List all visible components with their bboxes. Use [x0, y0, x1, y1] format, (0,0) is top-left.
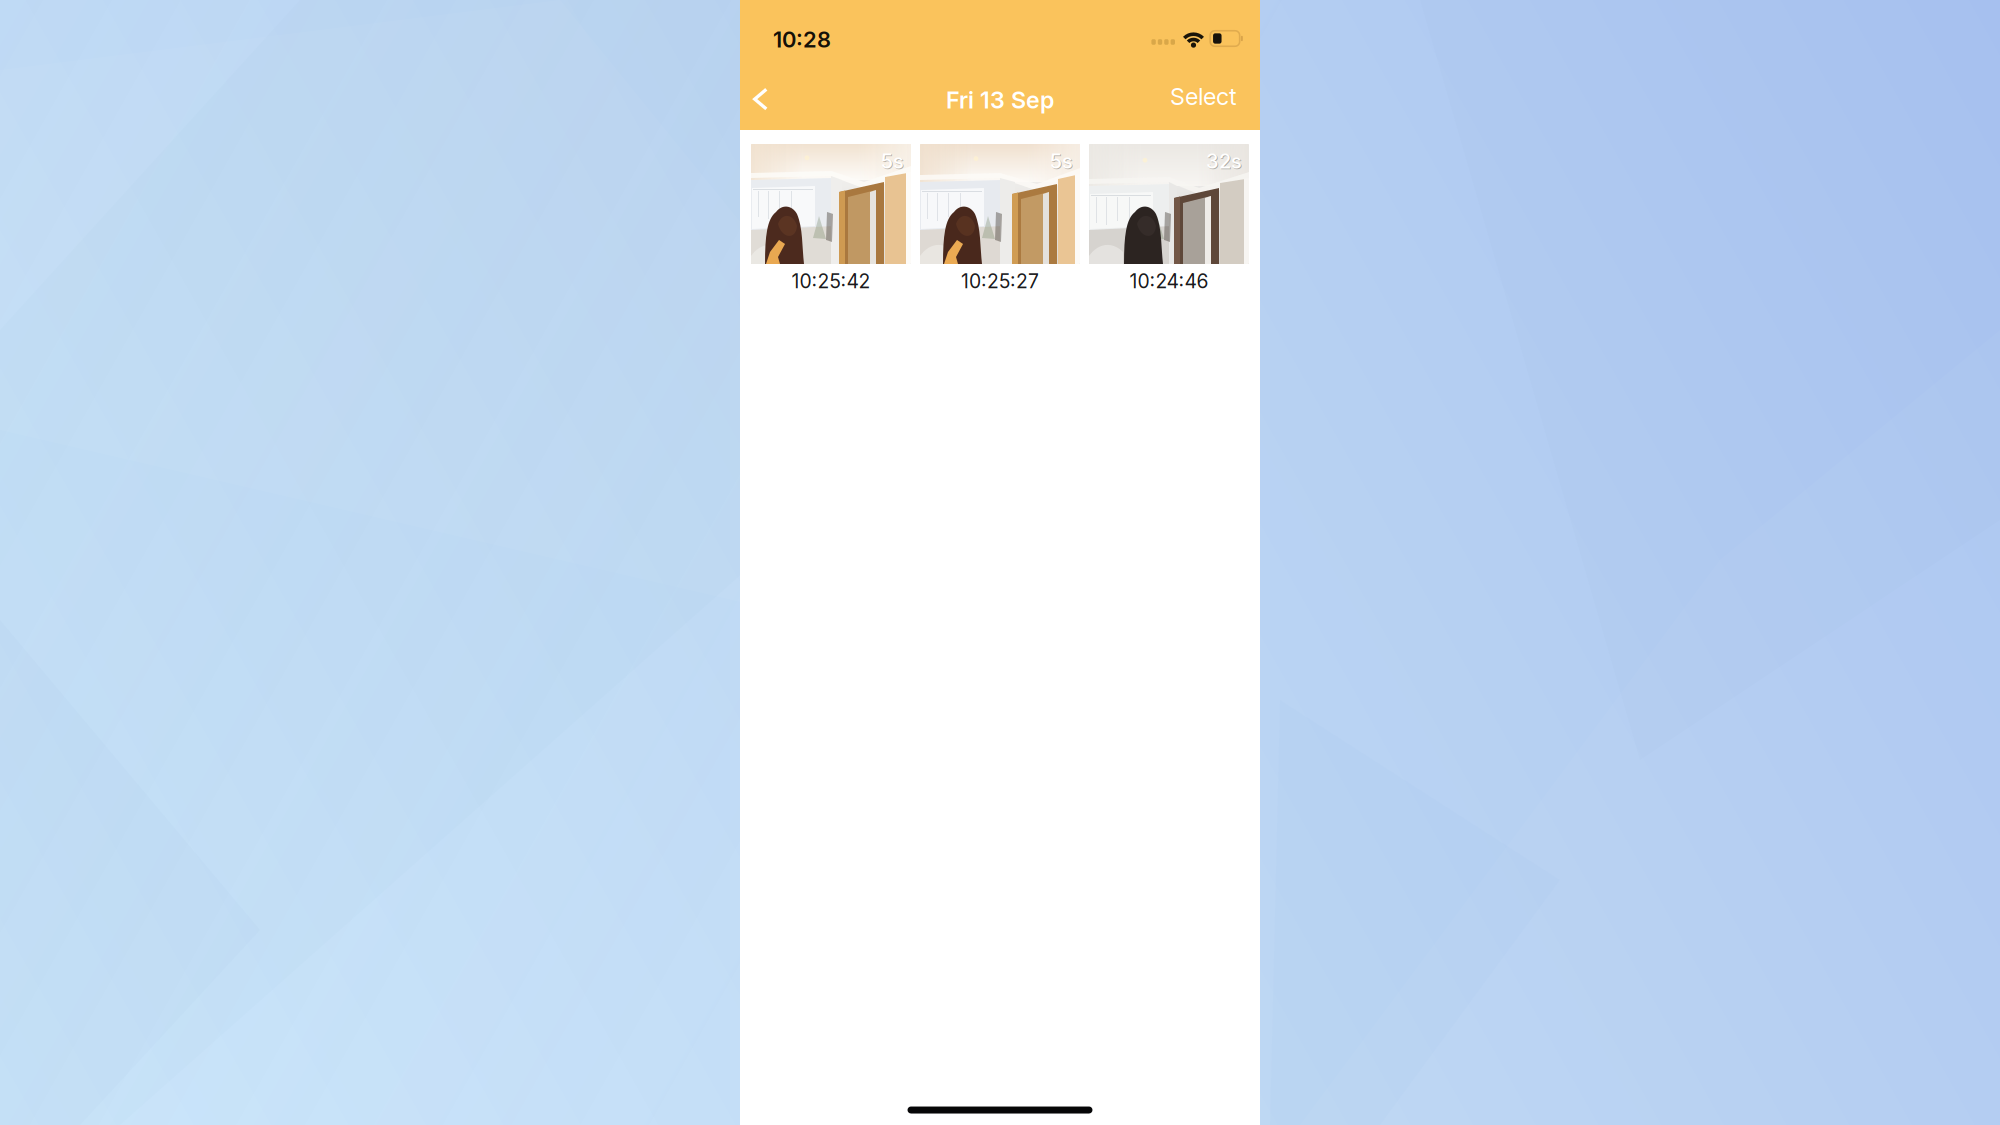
- staticText: Fri 13 Sep: [946, 86, 1054, 114]
- button[interactable]: Select: [1159, 76, 1248, 124]
- staticText: 10:24:46: [1129, 269, 1208, 293]
- staticText: 5s: [1050, 149, 1073, 173]
- staticText: 5s: [1051, 150, 1074, 174]
- staticText: 5s: [881, 149, 904, 173]
- staticText: 10:28: [773, 26, 831, 53]
- staticText: 32s: [1206, 149, 1242, 173]
- button[interactable]: 5s: [920, 144, 1080, 293]
- button[interactable]: 32s: [1089, 144, 1249, 293]
- staticText: 10:25:42: [791, 269, 870, 293]
- staticText: Select: [1170, 82, 1237, 111]
- button[interactable]: Back: [740, 79, 784, 122]
- staticText: 32s: [1207, 150, 1243, 174]
- staticText: 10:25:27: [961, 269, 1039, 293]
- button[interactable]: 5s: [751, 144, 911, 293]
- staticText: 5s: [882, 150, 905, 174]
